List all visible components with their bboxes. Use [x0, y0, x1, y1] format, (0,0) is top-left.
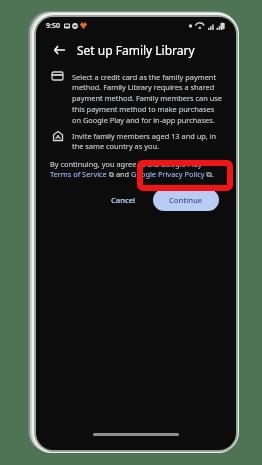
- staticText: 9:50: [46, 21, 60, 31]
- staticText: Continue: [169, 195, 203, 205]
- staticText: By continuing, you agree to the Google P…: [50, 159, 219, 179]
- button[interactable]: Continue: [153, 189, 219, 211]
- staticText: Invite family members aged 13 and up, in…: [72, 131, 223, 151]
- button[interactable]: Cancel: [100, 189, 147, 211]
- staticText: Cancel: [111, 195, 136, 205]
- staticText: Set up Family Library: [77, 42, 195, 58]
- button[interactable]: Back: [47, 38, 70, 61]
- staticText: Select a credit card as the family payme…: [72, 72, 223, 125]
